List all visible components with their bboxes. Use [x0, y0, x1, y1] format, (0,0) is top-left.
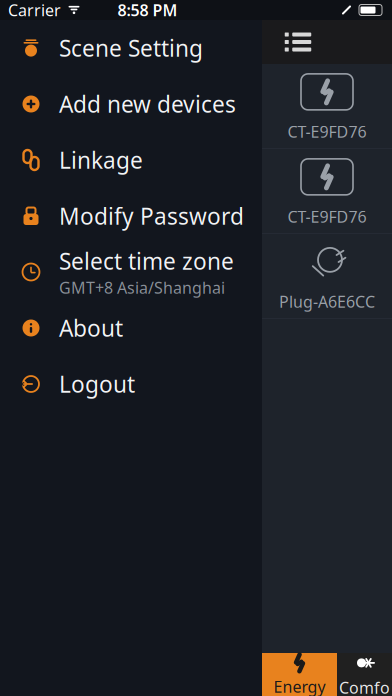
staticText: Linkage	[59, 145, 143, 175]
staticText: CT-E9FD76	[287, 121, 366, 142]
button[interactable]: Modify Password	[0, 188, 262, 244]
staticText: Energy	[273, 676, 325, 696]
staticText: About	[59, 313, 123, 343]
button[interactable]: Linkage	[0, 132, 262, 188]
button[interactable]: Energy	[262, 653, 337, 696]
staticText: Comfo	[339, 677, 390, 696]
button[interactable]: Select time zone	[0, 244, 262, 300]
staticText: Scene Setting	[59, 33, 203, 63]
staticText: Modify Password	[59, 201, 244, 231]
staticText: CT-E9FD76	[287, 206, 366, 227]
button[interactable]: Logout	[0, 356, 262, 412]
button[interactable]: CT-E9FD76	[262, 149, 392, 234]
staticText: GMT+8 Asia/Shanghai	[59, 277, 225, 298]
button[interactable]: CT-E9FD76	[262, 64, 392, 149]
staticText: Logout	[59, 369, 135, 399]
button[interactable]: Plug-A6E6CC	[262, 234, 392, 319]
button[interactable]: Add new devices	[0, 76, 262, 132]
button[interactable]: Comfo	[337, 653, 392, 696]
staticText: Carrier	[8, 0, 61, 21]
staticText: Select time zone	[59, 246, 234, 276]
staticText: Add new devices	[59, 89, 236, 119]
button[interactable]: Device list	[276, 20, 320, 64]
button[interactable]: Scene Setting	[0, 20, 262, 76]
button[interactable]: About	[0, 300, 262, 356]
staticText: Plug-A6E6CC	[279, 291, 375, 312]
staticText: 8:58 PM	[117, 0, 177, 21]
